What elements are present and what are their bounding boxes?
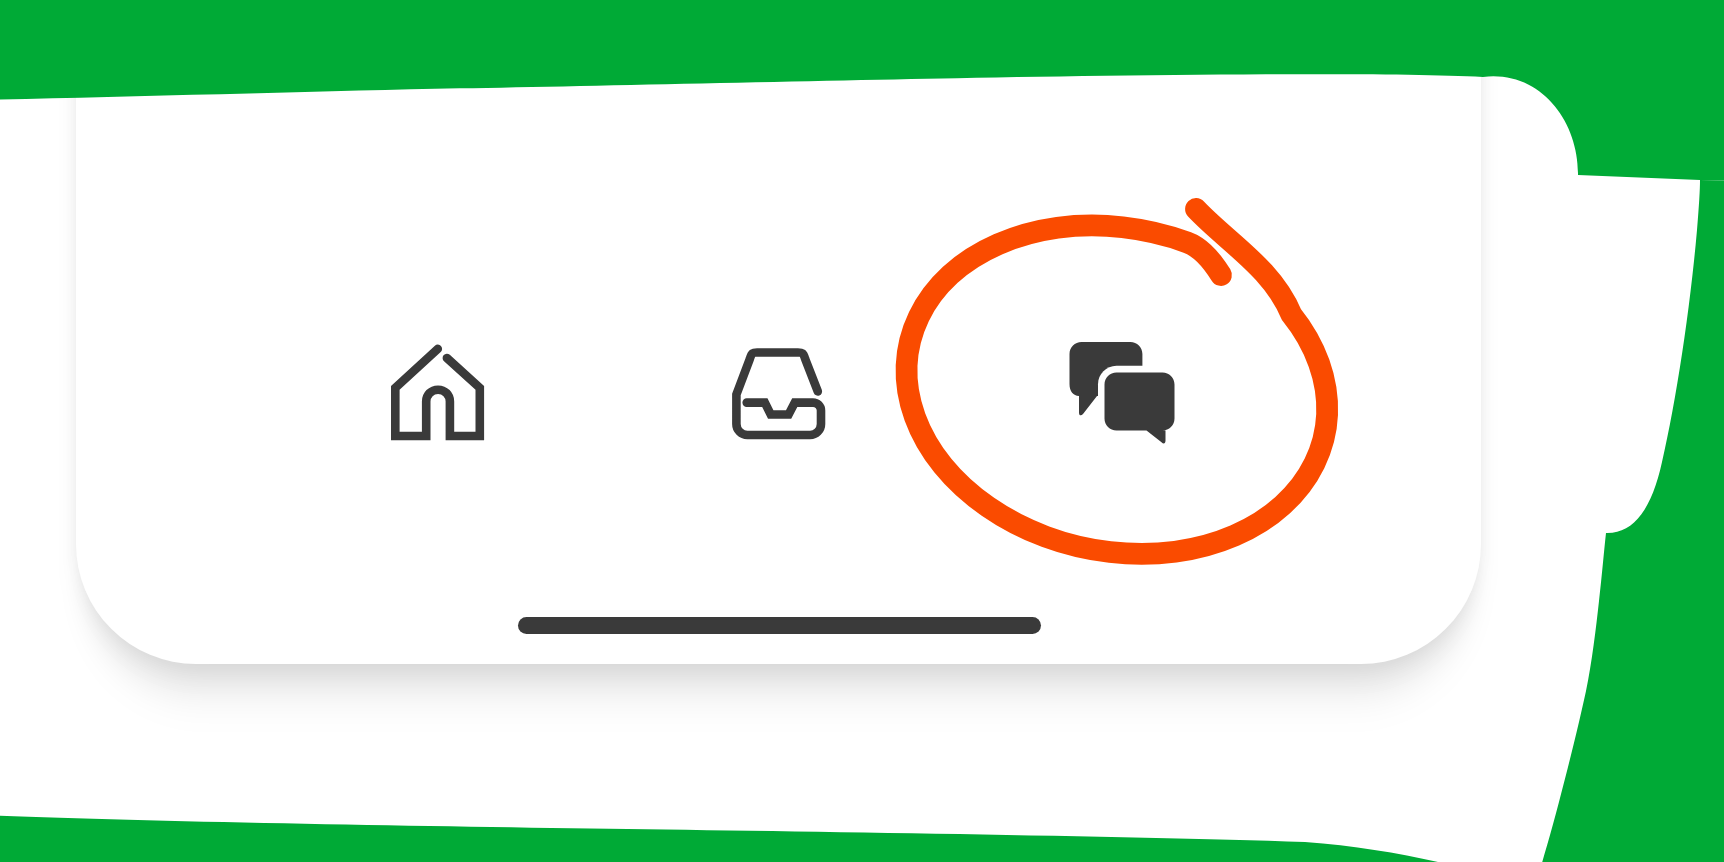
button[interactable]: Inbox — [668, 288, 888, 498]
button[interactable]: Home — [328, 288, 548, 498]
button[interactable]: Messages — [1012, 288, 1232, 498]
